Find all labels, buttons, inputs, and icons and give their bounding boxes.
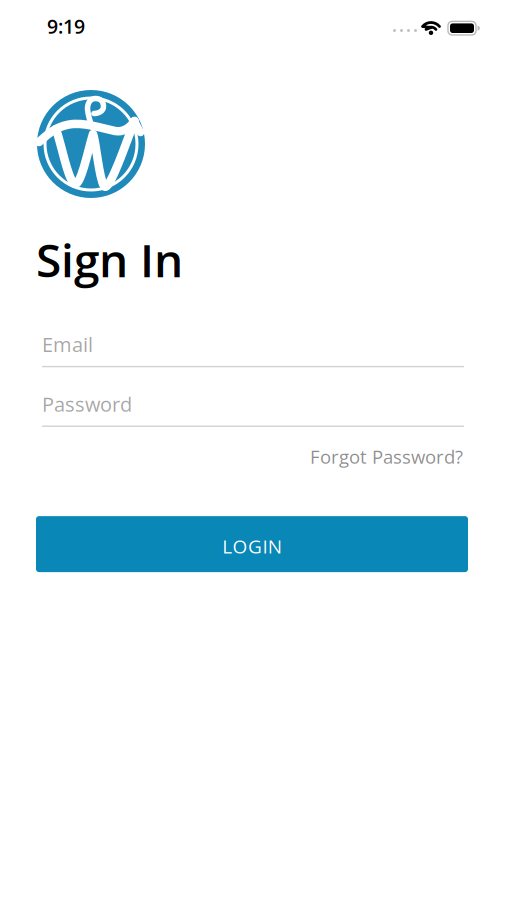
- staticText: 9:19: [47, 13, 85, 40]
- staticText: Forgot Password?: [310, 444, 463, 469]
- button[interactable]: LOGIN: [36, 516, 468, 572]
- staticText: Password: [42, 390, 132, 417]
- button[interactable]: Email: [0, 331, 464, 367]
- staticText: Sign In: [36, 228, 183, 291]
- button[interactable]: Forgot Password?: [310, 444, 463, 469]
- staticText: Email: [42, 331, 93, 358]
- button[interactable]: Password: [0, 390, 464, 427]
- staticText: LOGIN: [222, 533, 282, 559]
